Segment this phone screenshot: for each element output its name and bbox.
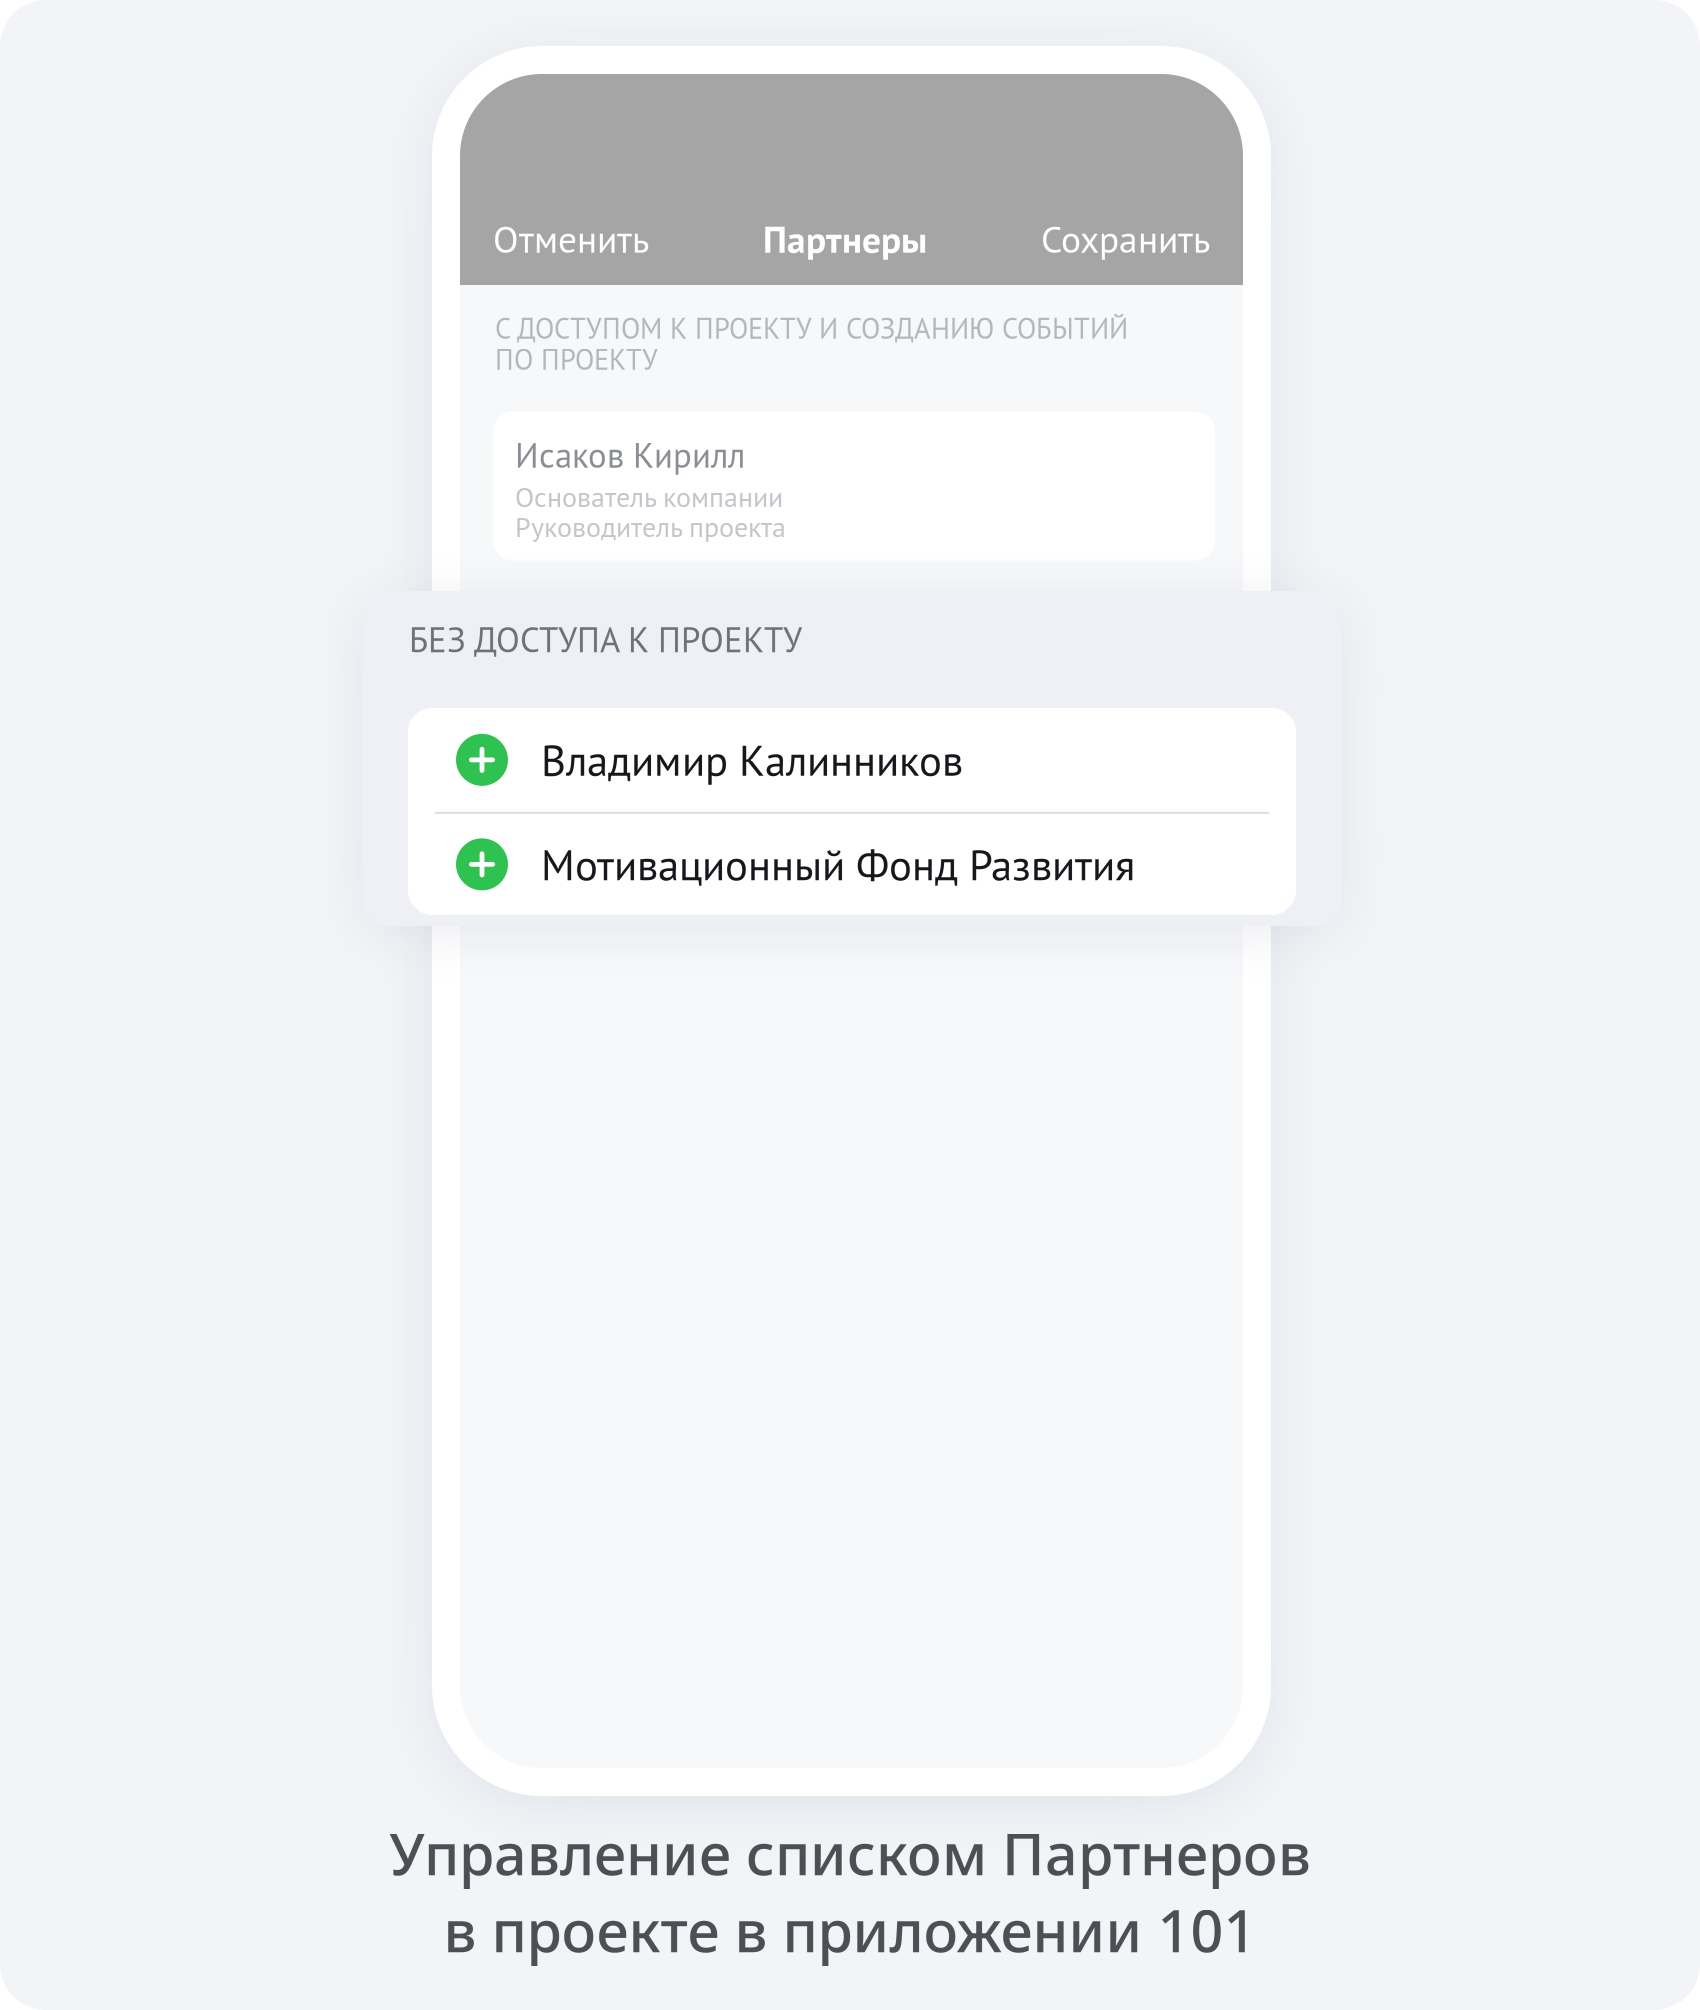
button[interactable]: Отменить (493, 215, 649, 263)
staticText: Отменить (493, 215, 649, 263)
staticText: Партнеры (763, 215, 927, 263)
staticText: Руководитель проекта (515, 509, 786, 545)
staticText: в проекте в приложении 101 (443, 1891, 1256, 1969)
staticText: ПО ПРОЕКТУ (495, 341, 658, 378)
staticText: Владимир Калинников (541, 732, 963, 787)
button[interactable]: Владимир Калинников (408, 708, 1296, 812)
button[interactable]: Мотивационный Фонд Развития (408, 814, 1296, 915)
staticText: Исаков Кирилл (515, 433, 745, 477)
staticText: Основатель компании (515, 479, 783, 515)
staticText: С ДОСТУПОМ К ПРОЕКТУ И СОЗДАНИЮ СОБЫТИЙ (495, 310, 1128, 347)
staticText: БЕЗ ДОСТУПА К ПРОЕКТУ (409, 617, 802, 662)
button[interactable]: Сохранить (1041, 215, 1210, 263)
staticText: Управление списком Партнеров (389, 1814, 1311, 1892)
staticText: Сохранить (1041, 215, 1210, 263)
staticText: Мотивационный Фонд Развития (541, 837, 1135, 892)
